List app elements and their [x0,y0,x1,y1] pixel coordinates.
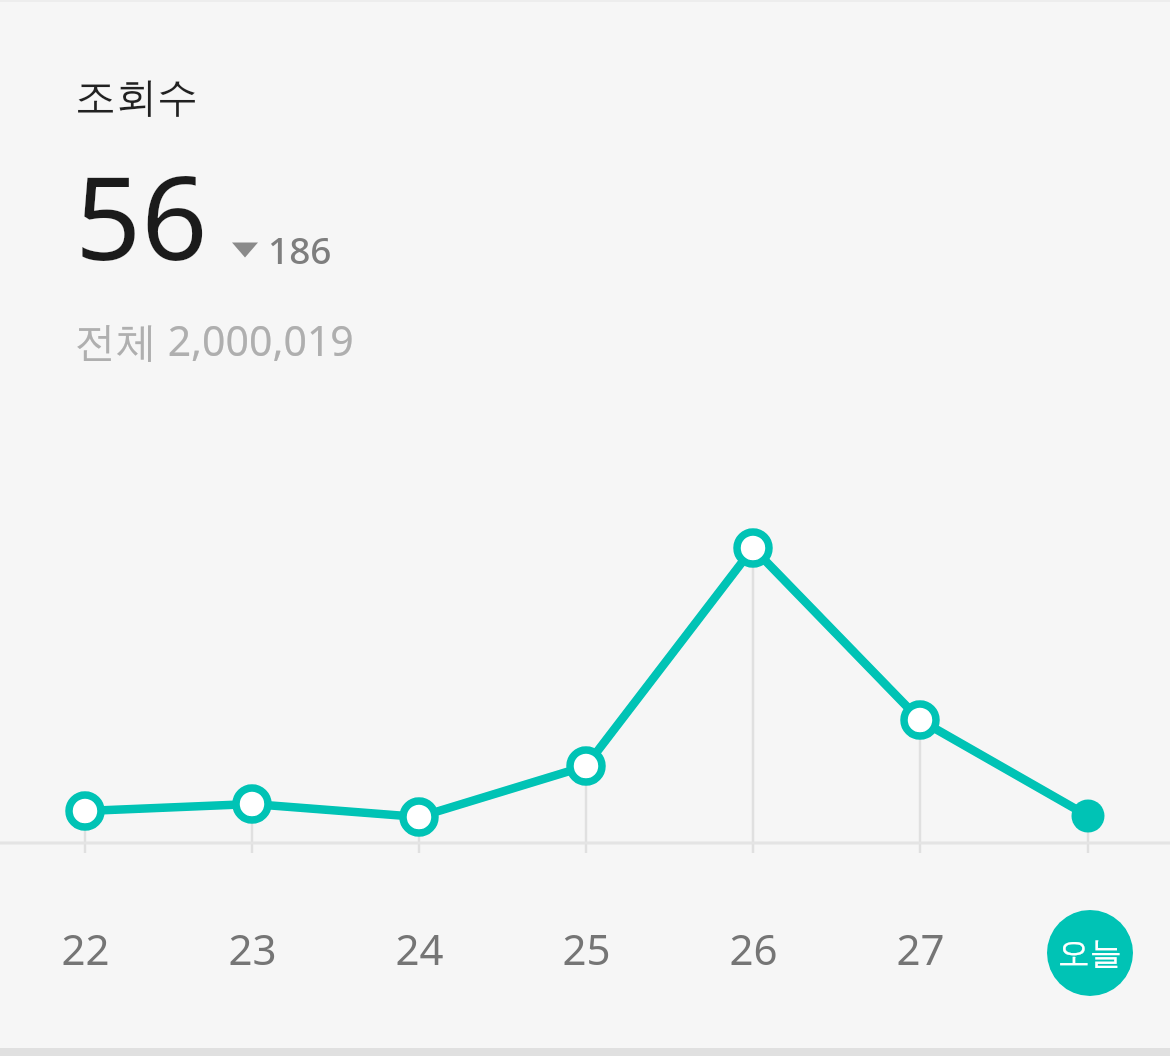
button[interactable]: 27 [870,916,970,980]
staticText: 오늘 [1058,933,1122,973]
button[interactable]: 23 [202,916,302,980]
button[interactable]: 24 [369,916,469,980]
staticText: 23 [228,920,277,977]
button[interactable]: 26 [703,916,803,980]
staticText: 전체 2,000,019 [75,312,354,368]
staticText: 조회수 [75,72,198,124]
staticText: 24 [395,920,444,977]
staticText: 25 [562,920,611,977]
button[interactable]: 22 [35,916,135,980]
button[interactable]: 25 [536,916,636,980]
button[interactable]: 오늘 [1047,910,1133,996]
staticText: 26 [729,920,778,977]
staticText: 56 [75,136,208,294]
staticText: 186 [268,224,332,274]
staticText: 22 [61,920,110,977]
staticText: 27 [896,920,945,977]
